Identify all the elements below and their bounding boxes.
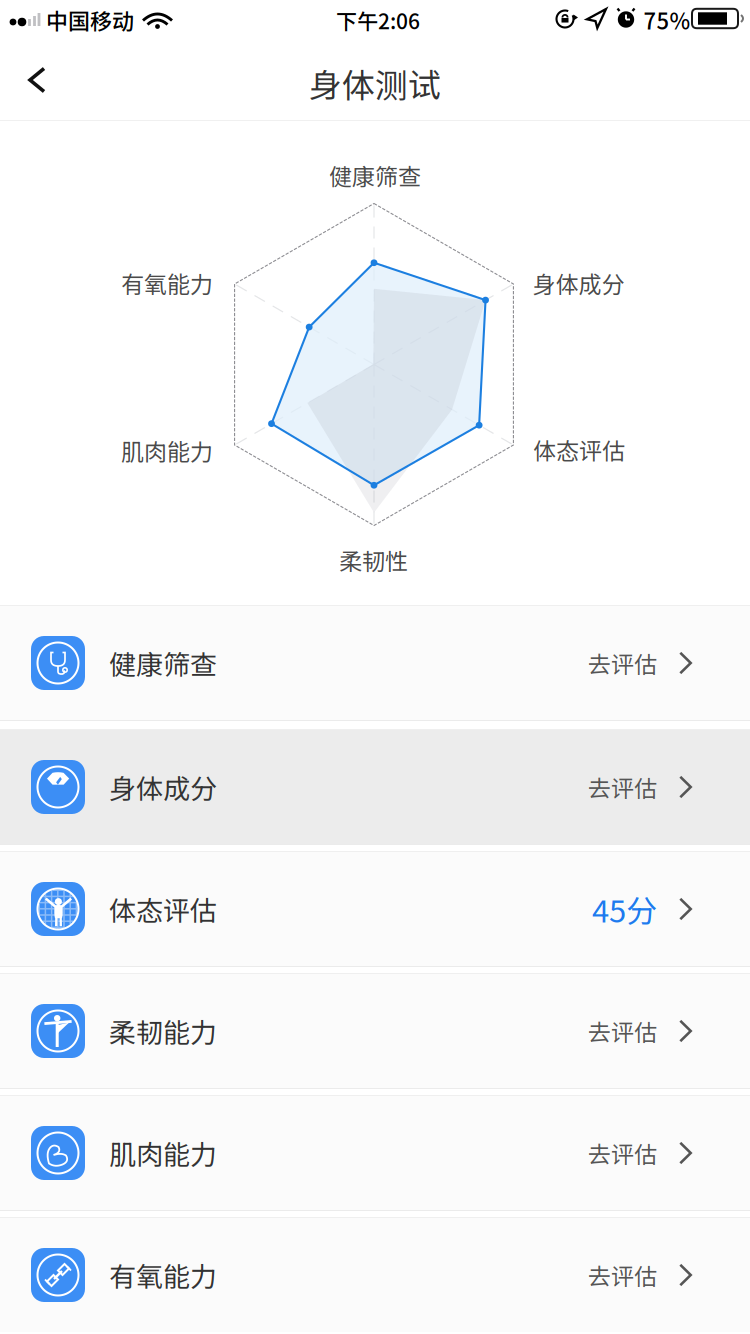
staticText: 有氧能力 bbox=[109, 1255, 217, 1295]
staticText: 柔韧能力 bbox=[109, 1011, 217, 1051]
staticText: 身体测试 bbox=[309, 59, 441, 107]
staticText: 中国移动 bbox=[46, 4, 134, 36]
staticText: 去评估 bbox=[588, 1014, 657, 1048]
button[interactable]: 体态评估 bbox=[0, 852, 750, 966]
staticText: 75% bbox=[643, 4, 690, 36]
staticText: 45分 bbox=[592, 887, 657, 931]
staticText: 去评估 bbox=[588, 1258, 657, 1292]
button[interactable]: 有氧能力 bbox=[0, 1218, 750, 1332]
staticText: 健康筛查 bbox=[329, 158, 421, 192]
staticText: 去评估 bbox=[588, 1136, 657, 1170]
button[interactable]: 身体成分 bbox=[0, 730, 750, 844]
button[interactable]: Back bbox=[0, 40, 70, 119]
staticText: 体态评估 bbox=[109, 889, 217, 929]
staticText: 下午2:06 bbox=[336, 5, 420, 35]
staticText: 肌肉能力 bbox=[121, 434, 213, 467]
staticText: 身体成分 bbox=[109, 767, 217, 807]
staticText: 去评估 bbox=[588, 646, 657, 680]
staticText: 体态评估 bbox=[533, 433, 625, 466]
staticText: 身体成分 bbox=[532, 266, 624, 300]
staticText: 柔韧性 bbox=[339, 543, 408, 577]
button[interactable]: 柔韧能力 bbox=[0, 974, 750, 1088]
staticText: 去评估 bbox=[588, 770, 657, 804]
button[interactable]: 肌肉能力 bbox=[0, 1096, 750, 1210]
staticText: 健康筛查 bbox=[109, 643, 217, 683]
staticText: 肌肉能力 bbox=[109, 1133, 217, 1173]
staticText: 有氧能力 bbox=[121, 266, 213, 300]
button[interactable]: 健康筛查 bbox=[0, 606, 750, 720]
